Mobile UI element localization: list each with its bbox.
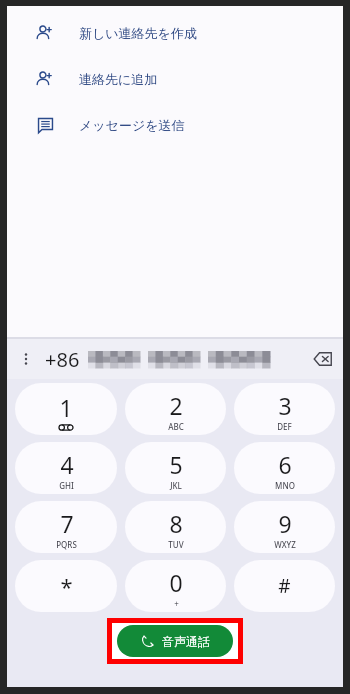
staticText: 3 (278, 390, 292, 421)
staticText: 5 (169, 449, 183, 480)
button[interactable]: 7 (15, 501, 117, 553)
staticText: ABC (168, 421, 184, 432)
button[interactable]: # (234, 560, 335, 612)
staticText: 連絡先に追加 (79, 71, 158, 87)
button[interactable]: 連絡先に追加 (7, 62, 343, 95)
staticText: 新しい連絡先を作成 (79, 25, 197, 41)
button[interactable]: 8 (125, 501, 226, 553)
button[interactable]: 音声通話 (117, 625, 233, 657)
button[interactable]: Backspace (303, 339, 343, 379)
staticText: +86 (45, 346, 80, 373)
staticText: 4 (60, 449, 74, 480)
staticText: メッセージを送信 (79, 117, 185, 133)
button[interactable]: メッセージを送信 (7, 108, 343, 141)
staticText: 7 (60, 508, 74, 539)
button[interactable]: 9 (234, 501, 335, 553)
button[interactable]: 1 (15, 383, 117, 435)
staticText: 8 (169, 508, 183, 539)
button[interactable]: 6 (234, 442, 335, 494)
button[interactable]: 3 (234, 383, 335, 435)
button[interactable]: 5 (125, 442, 226, 494)
staticText: 2 (169, 390, 183, 421)
staticText: 1 (59, 392, 73, 423)
button[interactable]: 新しい連絡先を作成 (7, 16, 343, 49)
staticText: PQRS (56, 539, 77, 550)
button[interactable]: 2 (125, 383, 226, 435)
button[interactable]: More options (7, 339, 45, 379)
staticText: DEF (277, 421, 292, 432)
staticText: + (174, 598, 179, 609)
staticText: 0 (169, 567, 183, 598)
button[interactable]: 4 (15, 442, 117, 494)
staticText: MNO (275, 480, 295, 491)
staticText: * (60, 571, 73, 601)
button[interactable]: 0 (125, 560, 226, 612)
staticText: WXYZ (274, 539, 296, 550)
staticText: 音声通話 (162, 634, 210, 649)
staticText: GHI (59, 480, 74, 491)
button[interactable]: * (15, 560, 117, 612)
staticText: 6 (278, 449, 292, 480)
staticText: # (278, 573, 291, 599)
staticText: JKL (170, 480, 182, 491)
staticText: TUV (168, 539, 184, 550)
staticText: 9 (278, 508, 292, 539)
